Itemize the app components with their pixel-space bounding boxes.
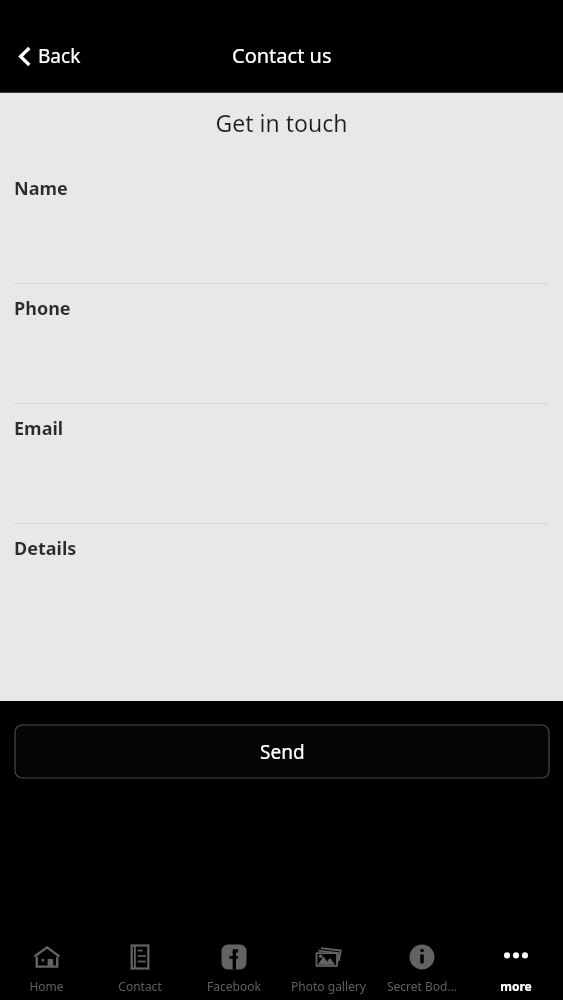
staticText: Contact us <box>232 42 332 69</box>
staticText: Phone <box>14 296 71 321</box>
staticText: more <box>500 978 532 994</box>
button[interactable]: Contact <box>93 928 187 1000</box>
button[interactable]: Home <box>0 928 93 1000</box>
staticText: Email <box>14 416 64 441</box>
staticText: Home <box>29 978 64 994</box>
staticText: Name <box>14 176 68 201</box>
button[interactable]: Photo gallery <box>281 928 375 1000</box>
staticText: Details <box>14 536 77 561</box>
button[interactable]: Secret Bod… <box>375 928 469 1000</box>
staticText: Get in touch <box>0 107 563 138</box>
staticText: Secret Bod… <box>387 978 457 994</box>
staticText: Back <box>38 43 81 69</box>
button[interactable]: Back <box>14 37 87 75</box>
button[interactable]: Send <box>15 725 549 778</box>
button[interactable]: more <box>469 928 563 1000</box>
button[interactable]: Phone <box>0 284 563 404</box>
staticText: Facebook <box>207 978 261 994</box>
button[interactable]: Name <box>0 164 563 284</box>
staticText: Photo gallery <box>291 978 366 994</box>
staticText: Contact <box>118 978 162 994</box>
staticText: Send <box>260 739 305 765</box>
button[interactable]: Facebook <box>187 928 281 1000</box>
button[interactable]: Email <box>0 404 563 524</box>
button[interactable]: Details <box>0 524 563 644</box>
